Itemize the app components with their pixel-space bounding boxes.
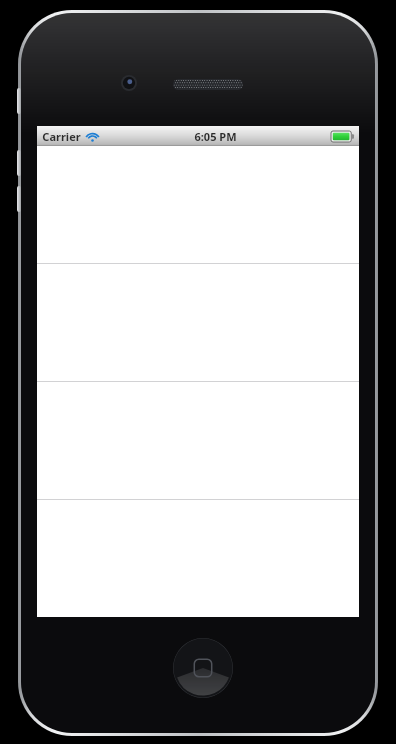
staticText: Carrier [42,129,81,144]
button[interactable]: Side button [17,88,21,114]
button[interactable]: Home [173,638,233,698]
button[interactable]: Side button [17,186,21,212]
staticText: 6:05 PM [194,129,237,144]
button[interactable]: Side button [17,150,21,176]
